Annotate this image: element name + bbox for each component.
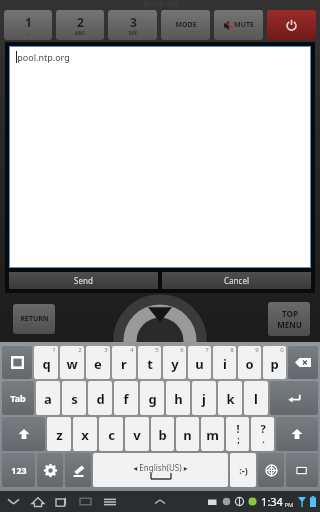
- staticText: 9: [255, 346, 259, 354]
- button[interactable]: g: [140, 381, 164, 415]
- button[interactable]: 3: [86, 346, 110, 379]
- staticText: DEF: [128, 30, 138, 37]
- button[interactable]: Handwriting: [65, 453, 91, 487]
- button[interactable]: Cancel: [162, 272, 311, 289]
- button[interactable]: 7: [188, 346, 211, 379]
- staticText: 4: [130, 346, 134, 354]
- button[interactable]: ?: [251, 417, 274, 451]
- staticText: MENU: [277, 319, 302, 330]
- button[interactable]: !: [226, 417, 249, 451]
- button[interactable]: h: [166, 381, 190, 415]
- staticText: d: [96, 390, 105, 408]
- staticText: v: [133, 426, 141, 444]
- staticText: t: [147, 355, 153, 373]
- staticText: g: [148, 390, 157, 408]
- button[interactable]: 2: [60, 346, 84, 379]
- button[interactable]: Home: [30, 494, 45, 509]
- staticText: 2: [78, 346, 82, 354]
- staticText: i: [223, 355, 227, 373]
- button[interactable]: Back: [6, 494, 21, 509]
- staticText: 1: [52, 346, 56, 354]
- staticText: r: [121, 355, 127, 373]
- button[interactable]: a: [36, 381, 60, 415]
- button[interactable]: Recents: [54, 494, 69, 509]
- button[interactable]: MODE: [161, 10, 210, 40]
- staticText: 3: [104, 346, 108, 354]
- staticText: l: [254, 390, 258, 408]
- button[interactable]: s: [62, 381, 86, 415]
- button[interactable]: 9: [238, 346, 261, 379]
- staticText: 2: [77, 14, 84, 30]
- button[interactable]: f: [114, 381, 138, 415]
- button[interactable]: Screenshot: [78, 494, 93, 509]
- button[interactable]: 4: [112, 346, 136, 379]
- staticText: RETURN: [20, 314, 49, 324]
- staticText: ;: [237, 433, 240, 445]
- button[interactable]: Clipboard: [286, 453, 318, 487]
- button[interactable]: 3: [108, 10, 157, 40]
- button[interactable]: n: [176, 417, 199, 451]
- staticText: Send: [74, 275, 93, 286]
- button[interactable]: 6: [163, 346, 186, 379]
- button[interactable]: 2: [56, 10, 104, 40]
- button[interactable]: RETURN: [13, 304, 55, 334]
- staticText: pool.ntp.org: [17, 51, 70, 63]
- button[interactable]: Send: [9, 272, 158, 289]
- staticText: q: [42, 355, 51, 373]
- button[interactable]: 8: [213, 346, 236, 379]
- button[interactable]: k: [218, 381, 242, 415]
- staticText: 6: [180, 346, 184, 354]
- button[interactable]: d: [88, 381, 112, 415]
- button[interactable]: v: [125, 417, 149, 451]
- button[interactable]: j: [192, 381, 216, 415]
- staticText: ◂ English(US) ▸: [133, 462, 188, 473]
- staticText: n: [183, 426, 192, 444]
- staticText: m: [206, 426, 219, 444]
- staticText: p: [270, 355, 279, 373]
- button[interactable]: Shift: [276, 417, 318, 451]
- button[interactable]: m: [201, 417, 224, 451]
- staticText: 1:34: [261, 494, 283, 509]
- button[interactable]: :-): [230, 453, 256, 487]
- button[interactable]: Menu: [102, 494, 117, 509]
- staticText: e: [94, 355, 102, 373]
- staticText: !: [236, 421, 240, 436]
- button[interactable]: MUTE: [214, 10, 263, 40]
- button[interactable]: Settings: [37, 453, 63, 487]
- staticText: .: [262, 433, 265, 445]
- staticText: k: [226, 390, 235, 408]
- staticText: c: [108, 426, 115, 444]
- staticText: 8: [230, 346, 234, 354]
- button[interactable]: l: [244, 381, 268, 415]
- staticText: 0: [280, 346, 284, 354]
- staticText: PM: [284, 501, 294, 509]
- button[interactable]: c: [99, 417, 123, 451]
- button[interactable]: 5: [138, 346, 161, 379]
- button[interactable]: Tab: [2, 381, 34, 415]
- button[interactable]: z: [47, 417, 71, 451]
- staticText: 1: [25, 14, 32, 30]
- button[interactable]: 1: [34, 346, 58, 379]
- staticText: f: [123, 390, 129, 408]
- staticText: u: [195, 355, 204, 373]
- staticText: MODE: [175, 20, 197, 30]
- staticText: z: [56, 426, 63, 444]
- button[interactable]: 1: [4, 10, 52, 40]
- button[interactable]: b: [151, 417, 174, 451]
- button[interactable]: Numbers: [2, 453, 35, 487]
- staticText: ABC: [75, 30, 85, 37]
- staticText: MUTE: [234, 20, 254, 30]
- button[interactable]: Shift: [2, 417, 45, 451]
- staticText: 7: [205, 346, 209, 354]
- button[interactable]: Expand: [152, 494, 168, 510]
- button[interactable]: x: [73, 417, 97, 451]
- button[interactable]: Enter: [270, 381, 318, 415]
- button[interactable]: Power: [267, 10, 316, 40]
- button[interactable]: Symbols: [2, 346, 32, 379]
- button[interactable]: 0: [263, 346, 286, 379]
- button[interactable]: Backspace: [288, 346, 318, 379]
- staticText: b: [158, 426, 167, 444]
- button[interactable]: TOP: [268, 302, 310, 336]
- button[interactable]: ◂ English(US) ▸: [93, 453, 228, 487]
- button[interactable]: Language: [258, 453, 284, 487]
